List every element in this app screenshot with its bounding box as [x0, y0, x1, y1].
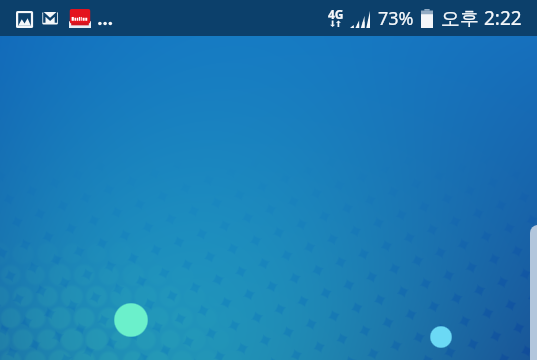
button[interactable]: More notifications — [97, 9, 115, 28]
button[interactable]: Gmail — [42, 9, 60, 28]
button[interactable]: Berita — [69, 9, 91, 28]
staticText: 73% — [378, 6, 414, 31]
button[interactable]: Card — [530, 225, 537, 360]
button[interactable]: Screenshot — [16, 9, 34, 28]
staticText: 4G — [328, 6, 344, 22]
staticText: 오후 2:22 — [441, 5, 522, 31]
